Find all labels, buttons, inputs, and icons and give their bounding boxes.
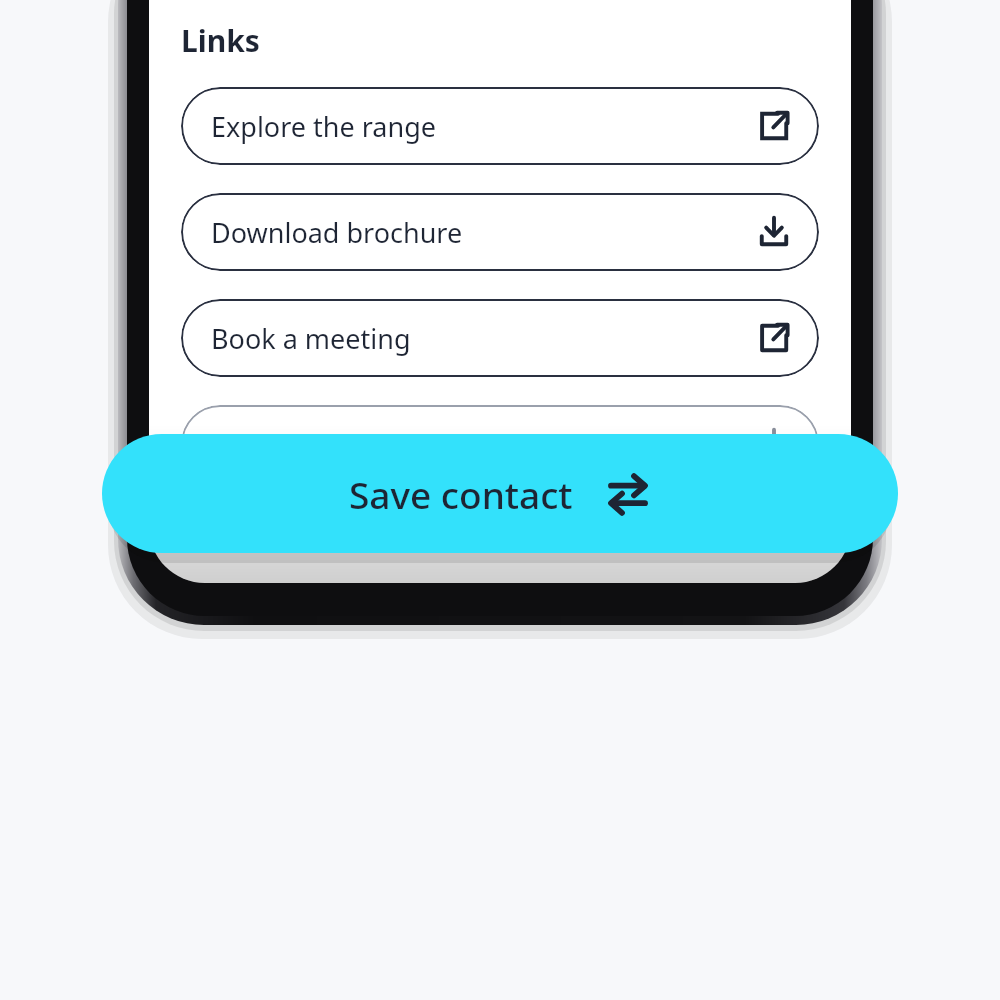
button[interactable]: Download report [181,405,819,483]
staticText: Download report [211,426,427,463]
other: Save contact [605,471,651,517]
staticText: Download brochure [211,214,463,251]
staticText: Book a meeting [211,320,411,357]
staticText: Save contact [349,469,573,519]
button[interactable]: Save contact [102,434,898,553]
staticText: Explore the range [211,108,437,145]
staticText: Links [181,20,260,61]
button[interactable]: Explore the range [181,87,819,165]
button[interactable]: Book a meeting [181,299,819,377]
button[interactable]: Download brochure [181,193,819,271]
